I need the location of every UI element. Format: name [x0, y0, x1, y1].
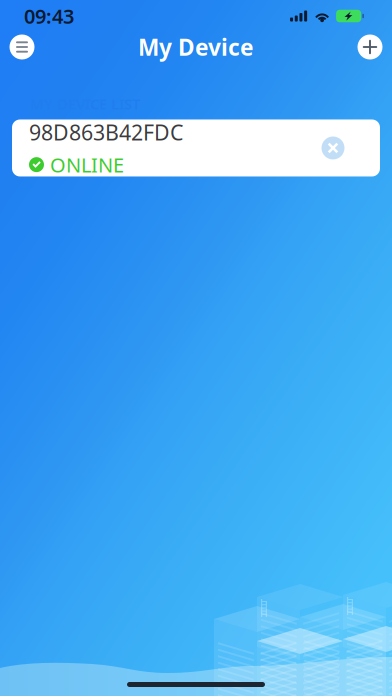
button[interactable]: Remove device [314, 129, 352, 167]
staticText: My Device [138, 32, 254, 62]
button[interactable]: Add device [349, 26, 391, 68]
button[interactable]: 98D863B42FDC [12, 119, 380, 176]
staticText: 09:43 [24, 3, 74, 29]
button[interactable]: Menu [1, 26, 43, 68]
staticText: ONLINE [50, 151, 124, 178]
staticText: 98D863B42FDC [29, 118, 183, 146]
